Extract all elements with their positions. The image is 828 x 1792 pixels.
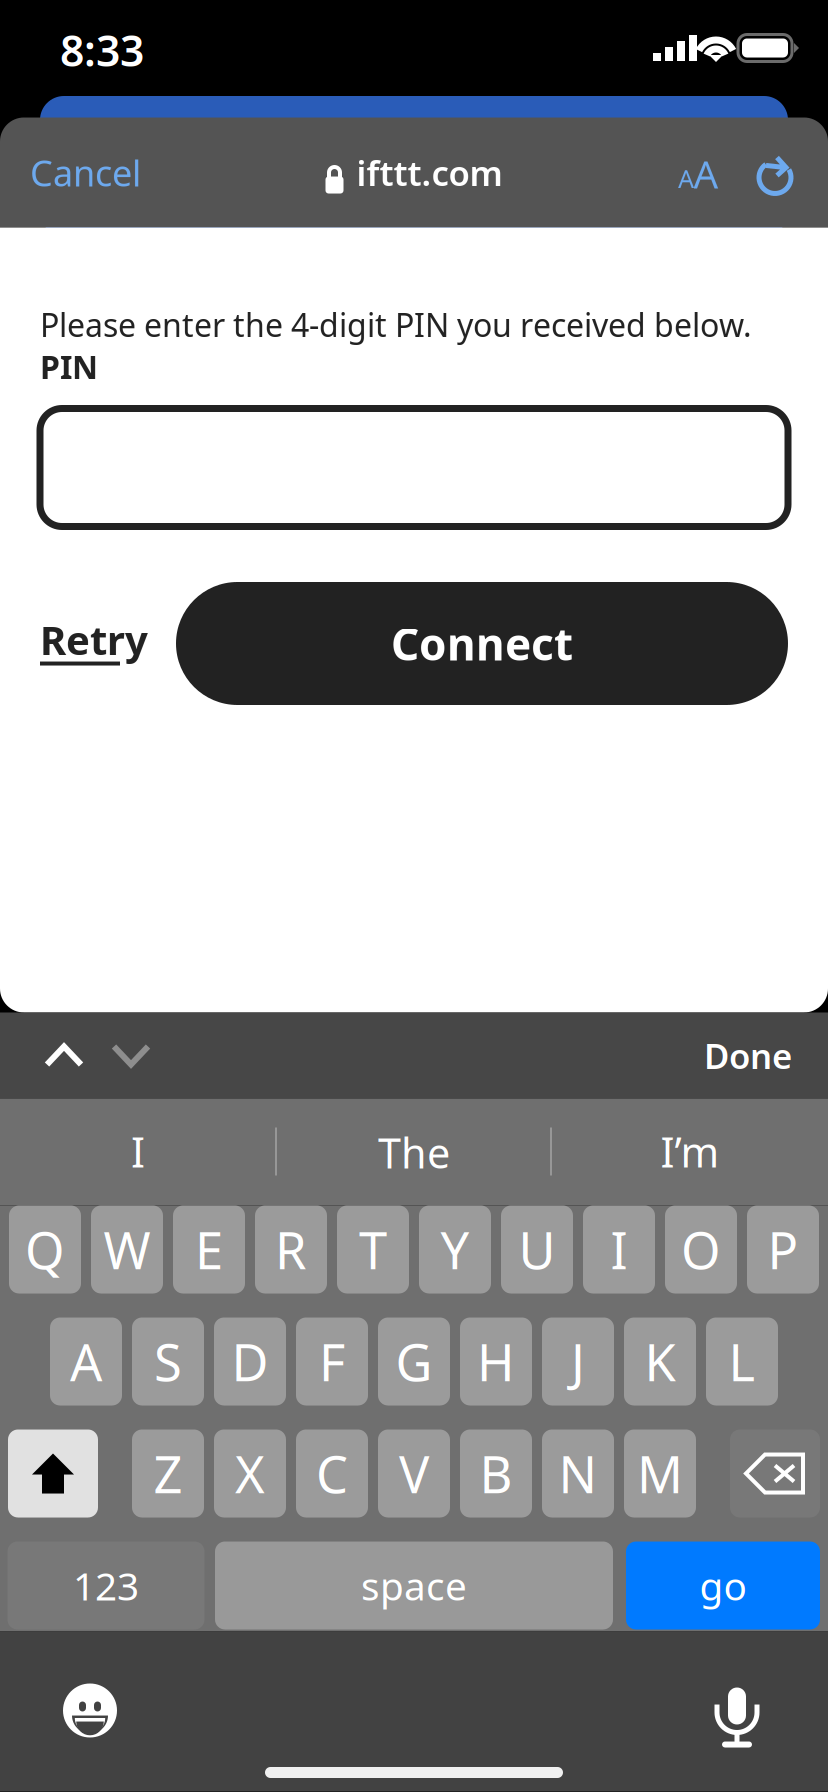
staticText: L — [728, 1328, 755, 1395]
button[interactable]: Retry — [40, 618, 148, 674]
button[interactable]: G — [378, 1317, 450, 1405]
button[interactable]: go — [626, 1541, 820, 1629]
button[interactable]: Delete — [730, 1429, 820, 1517]
button[interactable]: I — [583, 1205, 655, 1293]
staticText: V — [399, 1440, 429, 1507]
staticText: I’m — [660, 1124, 719, 1179]
button[interactable]: Done — [622, 1012, 792, 1098]
button[interactable]: Text size options — [650, 117, 746, 227]
staticText: PIN — [40, 345, 98, 388]
button[interactable]: D — [214, 1317, 286, 1405]
staticText: E — [195, 1216, 223, 1283]
button[interactable]: T — [337, 1205, 409, 1293]
button[interactable]: O — [665, 1205, 737, 1293]
button[interactable]: A — [50, 1317, 122, 1405]
button[interactable]: Dictation — [682, 1655, 792, 1767]
button[interactable]: Cancel — [0, 117, 206, 227]
staticText: A — [693, 148, 718, 199]
staticText: I — [131, 1124, 145, 1179]
staticText: A — [70, 1328, 102, 1395]
staticText: D — [231, 1328, 268, 1395]
staticText: Connect — [391, 614, 573, 673]
staticText: Q — [25, 1216, 65, 1283]
button[interactable]: Connect — [176, 582, 788, 705]
button[interactable]: B — [460, 1429, 532, 1517]
button[interactable]: V — [378, 1429, 450, 1517]
button[interactable]: Y — [419, 1205, 491, 1293]
button[interactable]: 123 — [7, 1541, 204, 1629]
button[interactable]: M — [624, 1429, 696, 1517]
button[interactable]: Shift — [8, 1429, 98, 1517]
staticText: 8:33 — [60, 22, 144, 78]
staticText: Please enter the 4-digit PIN you receive… — [40, 303, 752, 346]
staticText: T — [359, 1216, 387, 1283]
button[interactable]: C — [296, 1429, 368, 1517]
button[interactable]: N — [542, 1429, 614, 1517]
button[interactable]: Previous field — [22, 1012, 106, 1098]
button[interactable]: space — [215, 1541, 613, 1629]
staticText: K — [644, 1328, 675, 1395]
button[interactable]: H — [460, 1317, 532, 1405]
staticText: Retry — [40, 613, 148, 666]
staticText: M — [637, 1440, 683, 1507]
staticText: The — [378, 1125, 450, 1180]
staticText: A — [678, 162, 694, 195]
button[interactable]: Next field — [89, 1012, 173, 1098]
button[interactable]: W — [91, 1205, 163, 1293]
staticText: Cancel — [30, 149, 141, 196]
staticText: Done — [704, 1032, 792, 1078]
staticText: U — [518, 1216, 555, 1283]
staticText: O — [681, 1216, 721, 1283]
button[interactable]: J — [542, 1317, 614, 1405]
button[interactable]: K — [624, 1317, 696, 1405]
staticText: G — [395, 1328, 432, 1395]
button[interactable]: Reload page — [730, 117, 822, 227]
staticText: Z — [153, 1440, 182, 1507]
staticText: S — [154, 1328, 182, 1395]
staticText: 123 — [73, 1560, 139, 1611]
staticText: H — [477, 1328, 515, 1395]
staticText: J — [571, 1328, 585, 1395]
button[interactable]: S — [132, 1317, 204, 1405]
button[interactable]: P — [747, 1205, 819, 1293]
button[interactable]: Emoji keyboard — [35, 1654, 145, 1766]
button[interactable]: The — [278, 1099, 550, 1206]
button[interactable]: I’m — [554, 1098, 826, 1205]
button[interactable]: Z — [132, 1429, 204, 1517]
button[interactable]: F — [296, 1317, 368, 1405]
staticText: X — [235, 1440, 265, 1507]
button[interactable]: X — [214, 1429, 286, 1517]
staticText: P — [767, 1216, 798, 1283]
staticText: ifttt.com — [356, 149, 502, 195]
button[interactable]: I — [2, 1098, 274, 1205]
staticText: go — [699, 1560, 746, 1611]
staticText: W — [103, 1216, 150, 1283]
button[interactable]: L — [706, 1317, 778, 1405]
button[interactable]: U — [501, 1205, 573, 1293]
staticText: C — [316, 1440, 348, 1507]
staticText: I — [610, 1216, 627, 1283]
staticText: space — [361, 1560, 467, 1611]
button[interactable]: Q — [9, 1205, 81, 1293]
staticText: F — [319, 1328, 345, 1395]
button[interactable]: E — [173, 1205, 245, 1293]
staticText: R — [275, 1216, 307, 1283]
staticText: Y — [440, 1216, 469, 1283]
button[interactable]: R — [255, 1205, 327, 1293]
staticText: B — [479, 1440, 512, 1507]
staticText: N — [558, 1440, 597, 1507]
